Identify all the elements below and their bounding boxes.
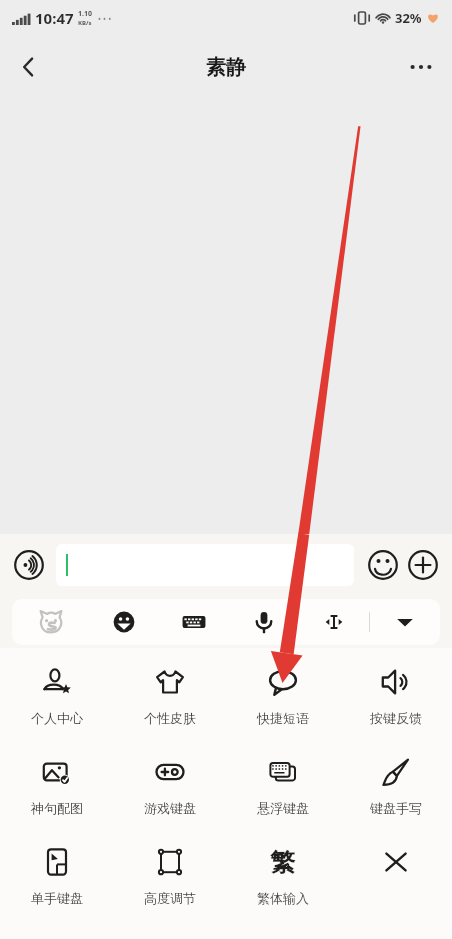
staticText: KB/s: [78, 19, 92, 27]
staticText: 高度调节: [144, 890, 196, 906]
staticText: 32%: [395, 9, 422, 27]
button[interactable]: Back: [6, 44, 52, 90]
staticText: 游戏键盘: [144, 800, 196, 816]
staticText: 神句配图: [31, 800, 83, 816]
button[interactable]: More options: [398, 44, 444, 90]
button[interactable]: Image match: [0, 750, 113, 840]
button[interactable]: Skins: [113, 660, 226, 750]
staticText: 繁体输入: [257, 890, 309, 906]
staticText: 单手键盘: [31, 890, 83, 906]
button[interactable]: One-hand keyboard: [0, 840, 113, 930]
button[interactable]: Keyboard: [159, 599, 229, 645]
button[interactable]: Handwriting: [339, 750, 452, 840]
button[interactable]: Traditional Chinese: [226, 840, 339, 930]
button[interactable]: Expression: [89, 599, 159, 645]
button[interactable]: Move cursor: [299, 599, 369, 645]
button[interactable]: Game keyboard: [113, 750, 226, 840]
staticText: 素静: [206, 55, 246, 80]
button[interactable]: Hide keyboard: [370, 599, 440, 645]
button[interactable]: Sogou input: [12, 599, 89, 645]
button[interactable]: Emoji: [364, 546, 402, 584]
staticText: 快捷短语: [257, 710, 309, 726]
staticText: 繁: [270, 847, 295, 878]
staticText: 个性皮肤: [144, 710, 196, 726]
staticText: 键盘手写: [370, 800, 422, 816]
button[interactable]: Height adjust: [113, 840, 226, 930]
button[interactable]: Voice input: [229, 599, 299, 645]
button[interactable]: [56, 544, 354, 586]
button[interactable]: Key feedback: [339, 660, 452, 750]
button[interactable]: Floating keyboard: [226, 750, 339, 840]
staticText: 10:47: [35, 8, 74, 28]
staticText: 1.10: [78, 9, 92, 19]
button[interactable]: More functions: [404, 546, 442, 584]
staticText: 悬浮键盘: [257, 800, 309, 816]
staticText: 个人中心: [31, 710, 83, 726]
button[interactable]: Voice message: [10, 546, 48, 584]
button[interactable]: Quick phrases: [226, 660, 339, 750]
staticText: 按键反馈: [370, 710, 422, 726]
button[interactable]: Personal center: [0, 660, 113, 750]
button[interactable]: Close: [339, 840, 452, 930]
staticText: • • •: [98, 13, 112, 24]
